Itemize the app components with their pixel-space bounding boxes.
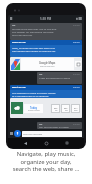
button[interactable]: Back bbox=[21, 139, 29, 147]
staticText: 5:38 PM bbox=[73, 86, 80, 88]
button[interactable]: Me bbox=[37, 122, 82, 129]
staticText: Ok I see the flight in a week bbox=[39, 126, 69, 128]
staticText: ok now is the way that i do to you and y… bbox=[12, 27, 57, 36]
staticText: Navigate, play music, organize your day,… bbox=[0, 150, 92, 172]
staticText: 5:38 PM bbox=[73, 24, 80, 26]
staticText: Maps for me bbox=[12, 41, 26, 44]
staticText: Partly Cloudy bbox=[28, 109, 40, 112]
button[interactable]: Right for me bbox=[10, 85, 82, 98]
staticText: 30° bbox=[64, 106, 68, 109]
button[interactable]: Voice search bbox=[14, 130, 21, 137]
staticText: Me bbox=[39, 123, 43, 126]
staticText: Me bbox=[12, 24, 16, 27]
staticText: Me bbox=[39, 73, 43, 76]
button[interactable]: Recent apps bbox=[63, 139, 71, 147]
staticText: sat bbox=[55, 109, 58, 111]
staticText: The weather in Delhi is mostly cloudy at… bbox=[12, 91, 56, 97]
staticText: Get the ride to it bbox=[40, 65, 55, 68]
button[interactable]: Me bbox=[37, 72, 82, 84]
staticText: 31° bbox=[74, 106, 78, 109]
staticText: Today bbox=[30, 106, 38, 109]
staticText: 5:38 PM bbox=[40, 17, 52, 21]
staticText: mon bbox=[74, 109, 78, 111]
button[interactable]: Me bbox=[10, 23, 82, 40]
staticText: sun bbox=[65, 109, 68, 111]
staticText: 5:38 PM bbox=[73, 123, 80, 125]
staticText: Type your message bbox=[23, 133, 43, 136]
staticText: 5:38 PM bbox=[73, 41, 80, 43]
button[interactable]: Type your message bbox=[22, 131, 82, 137]
staticText: Right for me bbox=[12, 86, 26, 89]
staticText: Look, I'll show you the way from it to t… bbox=[12, 46, 56, 52]
staticText: Google Maps bbox=[39, 61, 56, 65]
button[interactable]: Today bbox=[10, 98, 82, 118]
button[interactable]: Maps for me bbox=[10, 40, 82, 57]
button[interactable]: Home bbox=[42, 139, 50, 147]
staticText: 29° bbox=[54, 106, 58, 109]
button[interactable]: Open map bbox=[75, 61, 81, 67]
button[interactable]: Google Maps bbox=[10, 57, 82, 71]
staticText: I saw the weather in detail bbox=[39, 76, 70, 79]
staticText: 5:38 PM bbox=[73, 73, 80, 75]
